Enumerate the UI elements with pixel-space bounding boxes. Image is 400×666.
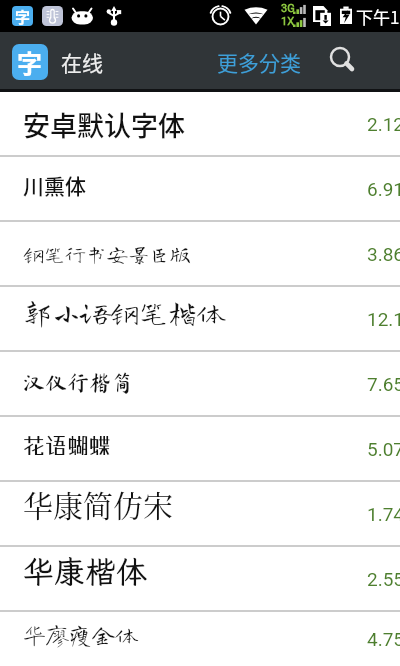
button[interactable]: 花语蝴蝶: [0, 417, 400, 480]
button[interactable]: 汉仪行楷简: [0, 352, 400, 415]
staticText: 字: [17, 44, 43, 80]
button[interactable]: 华廖瘦金体: [0, 612, 400, 666]
staticText: 6.91M: [367, 178, 400, 200]
staticText: 安卓默认字体: [23, 105, 185, 144]
button[interactable]: 郭小语钢笔楷体: [0, 287, 400, 350]
button[interactable]: App icon: [12, 44, 48, 80]
button[interactable]: 华康简仿宋: [0, 482, 400, 545]
staticText: 1.74M: [367, 503, 400, 525]
staticText: 花语蝴蝶: [23, 432, 112, 458]
staticText: 汉仪行楷简: [23, 372, 134, 394]
staticText: 更多分类: [217, 47, 301, 77]
button[interactable]: 华康楷体: [0, 547, 400, 610]
staticText: 字: [15, 6, 31, 26]
staticText: 5.07M: [367, 438, 400, 460]
staticText: 3G: [281, 2, 295, 15]
staticText: 1X: [281, 15, 295, 28]
staticText: 12.1M: [367, 308, 400, 330]
staticText: 华廖瘦金体: [23, 623, 138, 646]
button[interactable]: 更多分类: [211, 37, 307, 87]
button[interactable]: 安卓默认字体: [0, 92, 400, 155]
staticText: 4.75M: [367, 628, 400, 650]
staticText: 钢笔行书安景臣版: [23, 244, 191, 265]
staticText: 郭小语钢笔楷体: [23, 297, 227, 326]
staticText: 华康楷体: [23, 551, 147, 592]
staticText: 华康简仿宋: [23, 482, 173, 525]
staticText: 2.12M: [367, 113, 400, 135]
staticText: 下午1: [356, 4, 400, 29]
staticText: 川熏体: [23, 170, 86, 200]
staticText: 2.55M: [367, 568, 400, 590]
button[interactable]: 川熏体: [0, 157, 400, 220]
staticText: 7.65M: [367, 373, 400, 395]
button[interactable]: Search: [325, 43, 363, 81]
staticText: 在线: [61, 47, 103, 77]
button[interactable]: 钢笔行书安景臣版: [0, 222, 400, 285]
staticText: 3.86M: [367, 243, 400, 265]
